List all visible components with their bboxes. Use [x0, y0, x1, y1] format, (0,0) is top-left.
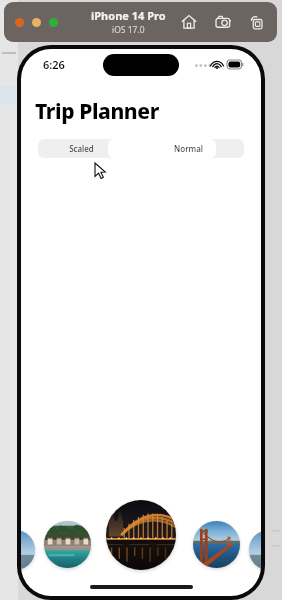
- button[interactable]: Home: [179, 12, 199, 32]
- button[interactable]: Destination photo: [106, 500, 176, 570]
- button[interactable]: Window control: [32, 18, 41, 27]
- staticText: Normal: [174, 143, 203, 154]
- staticText: 6:26: [43, 57, 65, 72]
- button[interactable]: Window control: [49, 18, 58, 27]
- button[interactable]: Destination photo: [249, 530, 261, 570]
- staticText: Scaled: [69, 143, 94, 154]
- button[interactable]: Screenshot: [213, 12, 233, 32]
- button[interactable]: Rotate: [247, 12, 267, 32]
- button[interactable]: Window control: [15, 18, 24, 27]
- staticText: iOS 17.0: [112, 24, 145, 36]
- button[interactable]: Destination photo: [21, 530, 35, 570]
- staticText: iPhone 14 Pro: [91, 8, 166, 23]
- button[interactable]: Scaled: [38, 139, 105, 158]
- staticText: Trip Planner: [35, 97, 159, 126]
- button[interactable]: Destination photo: [44, 521, 91, 568]
- button[interactable]: Normal: [108, 139, 216, 158]
- button[interactable]: Destination photo: [193, 521, 240, 568]
